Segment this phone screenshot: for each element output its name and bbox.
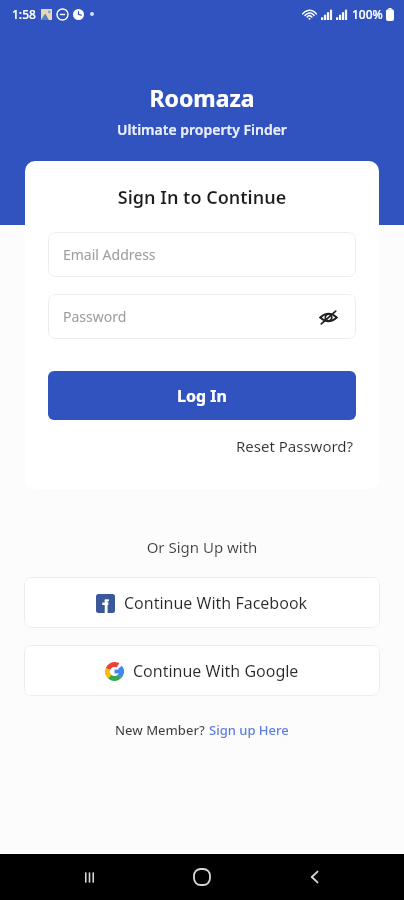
button[interactable]: Back (291, 854, 339, 900)
staticText: Sign up Here (209, 721, 289, 739)
button[interactable]: Password (48, 294, 356, 339)
staticText: Password (63, 307, 127, 326)
staticText: Email Address (63, 245, 156, 264)
button[interactable]: Email Address (48, 232, 356, 277)
staticText: Reset Password? (236, 436, 354, 456)
staticText: Sign In to Continue (25, 185, 379, 210)
button[interactable]: Continue With Facebook (24, 577, 380, 628)
button[interactable]: Log In (48, 371, 356, 420)
button[interactable]: Reset Password? (234, 432, 356, 460)
button[interactable]: Sign up Here (209, 721, 289, 739)
staticText: Or Sign Up with (0, 537, 404, 557)
staticText: Ultimate property Finder (0, 120, 404, 139)
button[interactable]: Show password (315, 304, 341, 330)
button[interactable]: Continue With Google (24, 645, 380, 696)
staticText: 1:58 (12, 6, 36, 22)
button[interactable]: Home (178, 854, 226, 900)
button[interactable]: Recent apps (65, 854, 113, 900)
staticText: Continue With Google (133, 660, 299, 682)
staticText: Log In (177, 385, 227, 407)
staticText: New Member? (115, 721, 209, 739)
staticText: 100% (352, 6, 383, 22)
staticText: Continue With Facebook (124, 592, 308, 614)
staticText: Roomaza (0, 82, 404, 113)
